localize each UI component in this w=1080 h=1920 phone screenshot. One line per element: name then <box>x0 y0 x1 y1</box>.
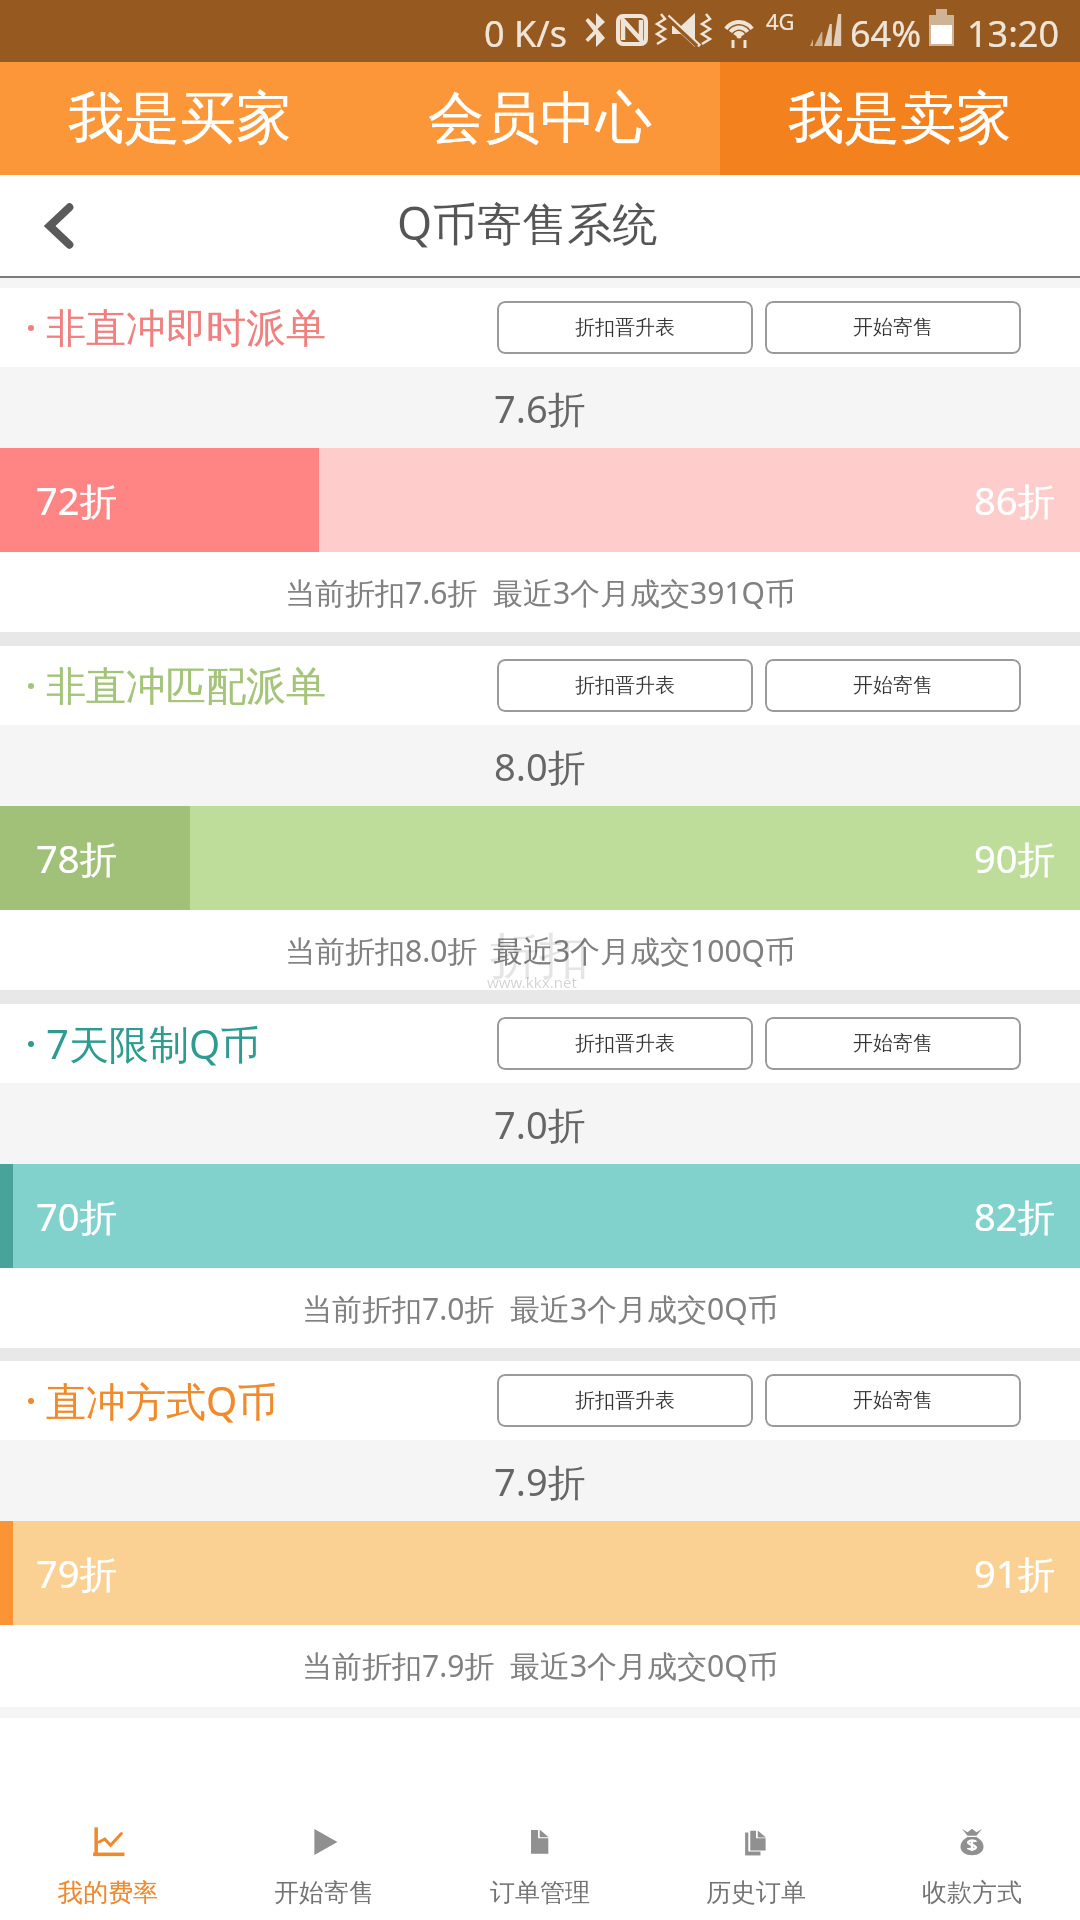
staticText: 折扣晋升表 <box>575 315 675 340</box>
button[interactable]: 收款方式 <box>864 1718 1080 1920</box>
button[interactable]: 我是买家 <box>0 62 360 175</box>
staticText: 78折 <box>36 832 118 884</box>
staticText: 订单管理 <box>490 1877 590 1908</box>
button[interactable]: 开始寄售 <box>765 659 1021 712</box>
staticText: www.kkx.net <box>487 972 577 992</box>
staticText: 历史订单 <box>706 1877 806 1908</box>
staticText: 当前折扣7.6折 最近3个月成交391Q币 <box>285 572 796 613</box>
staticText: 当前折扣7.9折 最近3个月成交0Q币 <box>302 1645 778 1686</box>
staticText: 开始寄售 <box>274 1877 374 1908</box>
staticText: 折扣晋升表 <box>575 1388 675 1413</box>
staticText: 我的费率 <box>58 1877 158 1908</box>
staticText: 7天限制Q币 <box>46 1016 261 1071</box>
staticText: 当前折扣8.0折 最近3个月成交100Q币 <box>285 930 796 971</box>
staticText: 开始寄售 <box>853 1388 933 1413</box>
button[interactable]: 我是卖家 <box>720 62 1080 175</box>
staticText: 7.6折 <box>494 382 586 434</box>
staticText: 开始寄售 <box>853 1031 933 1056</box>
staticText: 0 K/s <box>484 9 567 58</box>
staticText: 79折 <box>36 1547 118 1599</box>
staticText: 7.0折 <box>494 1098 586 1150</box>
button[interactable]: 会员中心 <box>360 62 720 175</box>
button[interactable]: 历史订单 <box>648 1718 864 1920</box>
staticText: 4G <box>766 6 795 36</box>
staticText: 收款方式 <box>922 1877 1022 1908</box>
staticText: 90折 <box>974 832 1056 884</box>
staticText: 8.0折 <box>494 740 586 792</box>
button[interactable]: 折扣晋升表 <box>497 301 753 354</box>
staticText: 82折 <box>974 1190 1056 1242</box>
staticText: 64% <box>850 9 922 58</box>
staticText: 折扣晋升表 <box>575 673 675 698</box>
staticText: 非直冲匹配派单 <box>46 661 326 711</box>
button[interactable]: 折扣晋升表 <box>497 659 753 712</box>
staticText: 折扣晋升表 <box>575 1031 675 1056</box>
button[interactable]: Back <box>20 186 100 266</box>
staticText: 开始寄售 <box>853 315 933 340</box>
staticText: Q币寄售系统 <box>397 192 658 253</box>
button[interactable]: 开始寄售 <box>765 301 1021 354</box>
button[interactable]: 开始寄售 <box>765 1017 1021 1070</box>
staticText: 13:20 <box>967 9 1060 58</box>
button[interactable]: 折扣晋升表 <box>497 1017 753 1070</box>
staticText: 当前折扣7.0折 最近3个月成交0Q币 <box>302 1288 778 1329</box>
staticText: 非直冲即时派单 <box>46 303 326 353</box>
button[interactable]: 我的费率 <box>0 1718 216 1920</box>
staticText: 我是卖家 <box>788 83 1012 154</box>
staticText: 70折 <box>36 1190 118 1242</box>
staticText: 72折 <box>36 474 118 526</box>
staticText: 我是买家 <box>68 83 292 154</box>
button[interactable]: 订单管理 <box>432 1718 648 1920</box>
staticText: 折扣 <box>489 925 589 988</box>
staticText: 91折 <box>974 1547 1056 1599</box>
staticText: 直冲方式Q币 <box>46 1373 278 1428</box>
button[interactable]: 折扣晋升表 <box>497 1374 753 1427</box>
staticText: 会员中心 <box>428 83 652 154</box>
staticText: 7.9折 <box>494 1455 586 1507</box>
staticText: 开始寄售 <box>853 673 933 698</box>
button[interactable]: 开始寄售 <box>765 1374 1021 1427</box>
staticText: 86折 <box>974 474 1056 526</box>
button[interactable]: 开始寄售 <box>216 1718 432 1920</box>
